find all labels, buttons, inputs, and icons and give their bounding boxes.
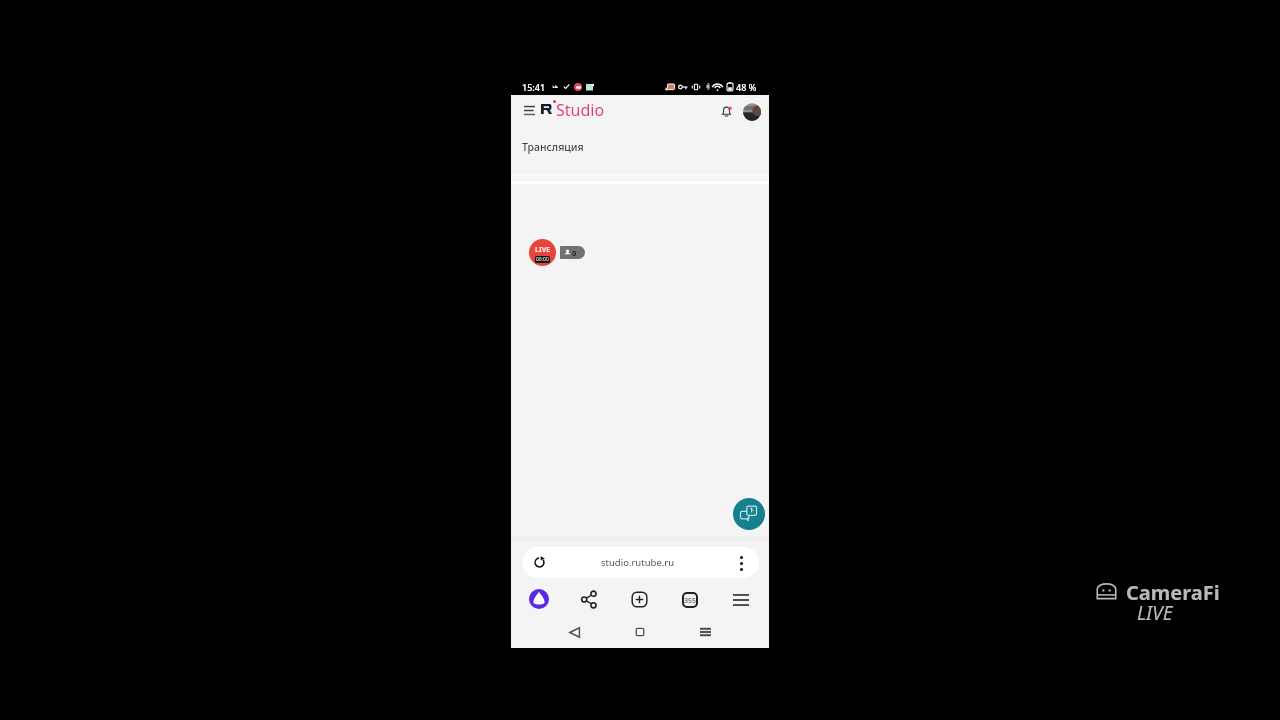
button[interactable]: Profile	[743, 103, 761, 121]
button[interactable]: Tabs	[678, 588, 701, 611]
button[interactable]: Recent apps	[694, 621, 716, 643]
button[interactable]: Open menu	[518, 99, 541, 122]
button[interactable]: Chat	[733, 498, 765, 530]
button[interactable]: Home	[629, 621, 651, 643]
staticText: studio.rutube.ru	[601, 556, 675, 569]
button[interactable]: Back	[563, 621, 585, 643]
staticText: CameraFi	[1126, 579, 1220, 606]
button[interactable]: More options	[731, 553, 751, 573]
button[interactable]: Notifications	[715, 100, 737, 122]
staticText: 48 %	[736, 81, 757, 93]
staticText: 00:00	[536, 256, 549, 263]
staticText: Studio	[556, 99, 605, 121]
button[interactable]: Share	[577, 588, 600, 611]
staticText: 15:41	[522, 81, 546, 93]
button[interactable]: Studio	[540, 99, 605, 123]
button[interactable]: Reload page	[522, 547, 759, 578]
staticText: 0	[572, 248, 577, 258]
button[interactable]: Browser menu	[729, 588, 752, 611]
staticText: 355	[684, 596, 697, 606]
button[interactable]: New tab	[628, 588, 651, 611]
button[interactable]: 0	[560, 246, 585, 259]
button[interactable]: LIVE	[529, 239, 556, 266]
staticText: LIVE	[535, 245, 551, 255]
button[interactable]: Alice assistant	[527, 587, 550, 610]
other: Reload page	[533, 556, 546, 569]
staticText: LIVE	[1137, 600, 1173, 626]
staticText: Трансляция	[522, 140, 584, 154]
